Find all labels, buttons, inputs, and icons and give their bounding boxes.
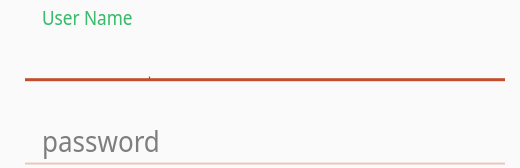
button[interactable]: password bbox=[0, 84, 520, 168]
staticText: User Name bbox=[42, 4, 133, 31]
staticText: password bbox=[42, 121, 160, 160]
button[interactable]: User Name bbox=[0, 0, 520, 84]
